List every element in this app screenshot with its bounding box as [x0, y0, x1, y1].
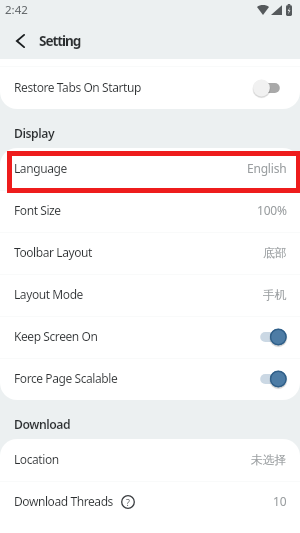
button[interactable]: Font Size	[0, 190, 300, 232]
button[interactable]: Location	[0, 439, 300, 481]
staticText: Font Size	[14, 202, 61, 218]
button[interactable]: Download Threads	[0, 481, 300, 523]
button[interactable]: Force Page Scalable	[0, 358, 300, 400]
staticText: Location	[14, 451, 59, 467]
staticText: English	[247, 160, 287, 176]
button[interactable]: Keep Screen On	[0, 316, 300, 358]
staticText: 2:42	[5, 2, 28, 18]
button[interactable]: Help	[121, 495, 135, 509]
staticText: Restore Tabs On Startup	[14, 79, 141, 95]
staticText: Layout Mode	[14, 286, 83, 302]
staticText: Keep Screen On	[14, 328, 98, 344]
staticText: 手机	[263, 287, 287, 302]
staticText: Download	[14, 416, 71, 433]
button[interactable]: Restore Tabs On Startup	[0, 67, 300, 109]
staticText: Download Threads	[14, 493, 113, 509]
staticText: Toolbar Layout	[14, 244, 92, 260]
button[interactable]: Back	[6, 27, 34, 55]
staticText: Display	[14, 125, 55, 142]
staticText: 10	[273, 493, 287, 509]
staticText: 未选择	[251, 452, 287, 467]
staticText: Force Page Scalable	[14, 370, 118, 386]
button[interactable]: Language	[0, 148, 300, 190]
staticText: 底部	[263, 245, 287, 260]
staticText: Language	[14, 160, 67, 176]
button[interactable]: Layout Mode	[0, 274, 300, 316]
staticText: ?	[126, 496, 130, 508]
staticText: 100%	[257, 202, 287, 218]
staticText: Setting	[39, 31, 81, 50]
button[interactable]: Toolbar Layout	[0, 232, 300, 274]
